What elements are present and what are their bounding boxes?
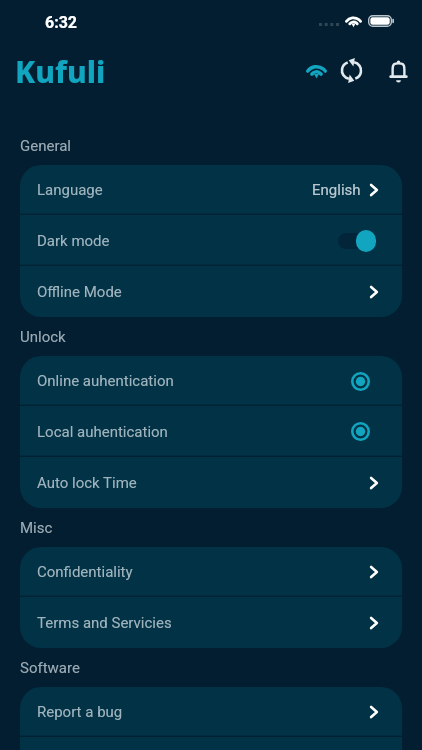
staticText: Unlock bbox=[20, 328, 66, 346]
staticText: Misc bbox=[20, 519, 53, 537]
staticText: Local auhentication bbox=[37, 423, 168, 441]
button[interactable]: Auto lock Time bbox=[20, 457, 402, 508]
staticText: Online auhentication bbox=[37, 372, 174, 390]
staticText: Offline Mode bbox=[37, 283, 122, 301]
staticText: Report a bug bbox=[37, 703, 123, 721]
button[interactable]: Confidentiality bbox=[20, 547, 402, 597]
button[interactable]: Language bbox=[20, 165, 402, 215]
button[interactable]: Local auhentication bbox=[20, 406, 402, 457]
staticText: 6:32 bbox=[45, 13, 78, 32]
button[interactable]: Notifications bbox=[378, 50, 418, 90]
staticText: Language bbox=[37, 181, 103, 199]
button[interactable]: Sync bbox=[331, 50, 371, 90]
button[interactable]: Report a bug bbox=[20, 687, 402, 737]
button[interactable]: Selected bbox=[351, 367, 370, 396]
staticText: Software bbox=[20, 659, 80, 677]
staticText: English bbox=[312, 181, 361, 199]
button[interactable]: Terms and Servicies bbox=[20, 597, 402, 648]
staticText: Dark mode bbox=[37, 232, 110, 250]
staticText: Confidentiality bbox=[37, 563, 133, 581]
staticText: Kufuli bbox=[15, 51, 106, 92]
button[interactable]: Online auhentication bbox=[20, 356, 402, 406]
button[interactable]: Offline Mode bbox=[20, 266, 402, 317]
staticText: Terms and Servicies bbox=[37, 614, 172, 632]
staticText: General bbox=[20, 137, 72, 155]
staticText: Auto lock Time bbox=[37, 474, 137, 492]
button[interactable]: Selected bbox=[351, 417, 370, 446]
button[interactable]: Dark mode bbox=[20, 215, 402, 266]
button[interactable]: Dark mode toggle bbox=[336, 228, 376, 254]
button[interactable]: Network bbox=[296, 50, 336, 90]
